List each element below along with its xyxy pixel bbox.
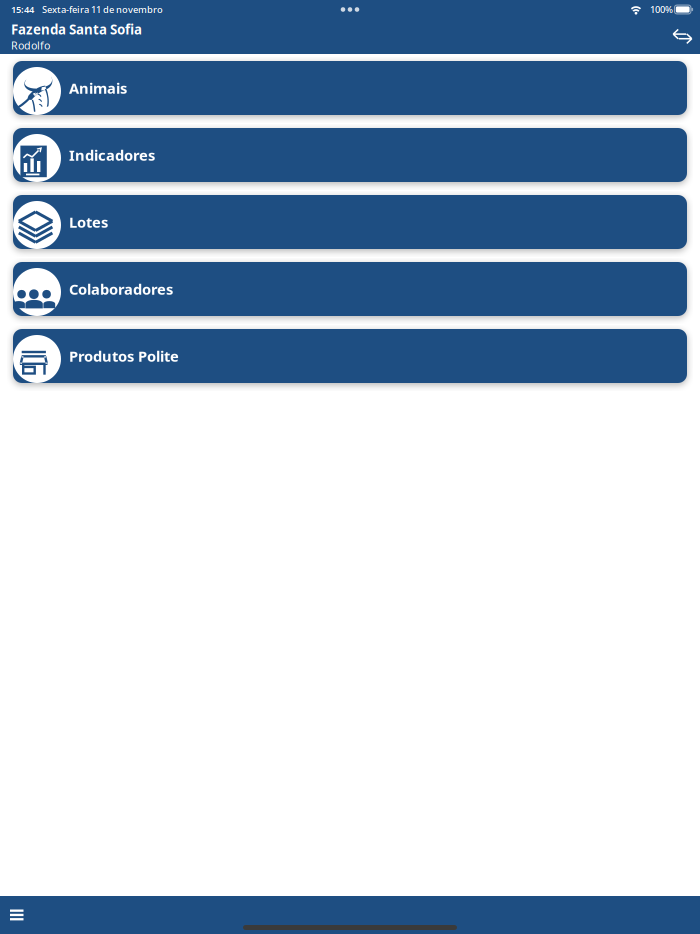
staticText: 15:44 <box>11 3 34 16</box>
staticText: Produtos Polite <box>69 346 179 366</box>
staticText: Lotes <box>69 212 108 232</box>
button[interactable]: Indicadores <box>13 128 687 182</box>
button[interactable]: Menu <box>0 900 35 929</box>
staticText: Fazenda Santa Sofia <box>11 21 142 38</box>
button[interactable]: Colaboradores <box>13 262 687 316</box>
staticText: Animais <box>69 78 127 98</box>
staticText: Colaboradores <box>69 279 173 299</box>
staticText: Indicadores <box>69 145 155 165</box>
staticText: 100% <box>650 3 673 16</box>
button[interactable]: Lotes <box>13 195 687 249</box>
staticText: Sexta-feira 11 de novembro <box>42 3 163 16</box>
button[interactable]: Trocar fazenda <box>665 20 700 52</box>
button[interactable]: Produtos Polite <box>13 329 687 383</box>
button[interactable]: Animais <box>13 61 687 115</box>
staticText: Rodolfo <box>11 38 50 52</box>
